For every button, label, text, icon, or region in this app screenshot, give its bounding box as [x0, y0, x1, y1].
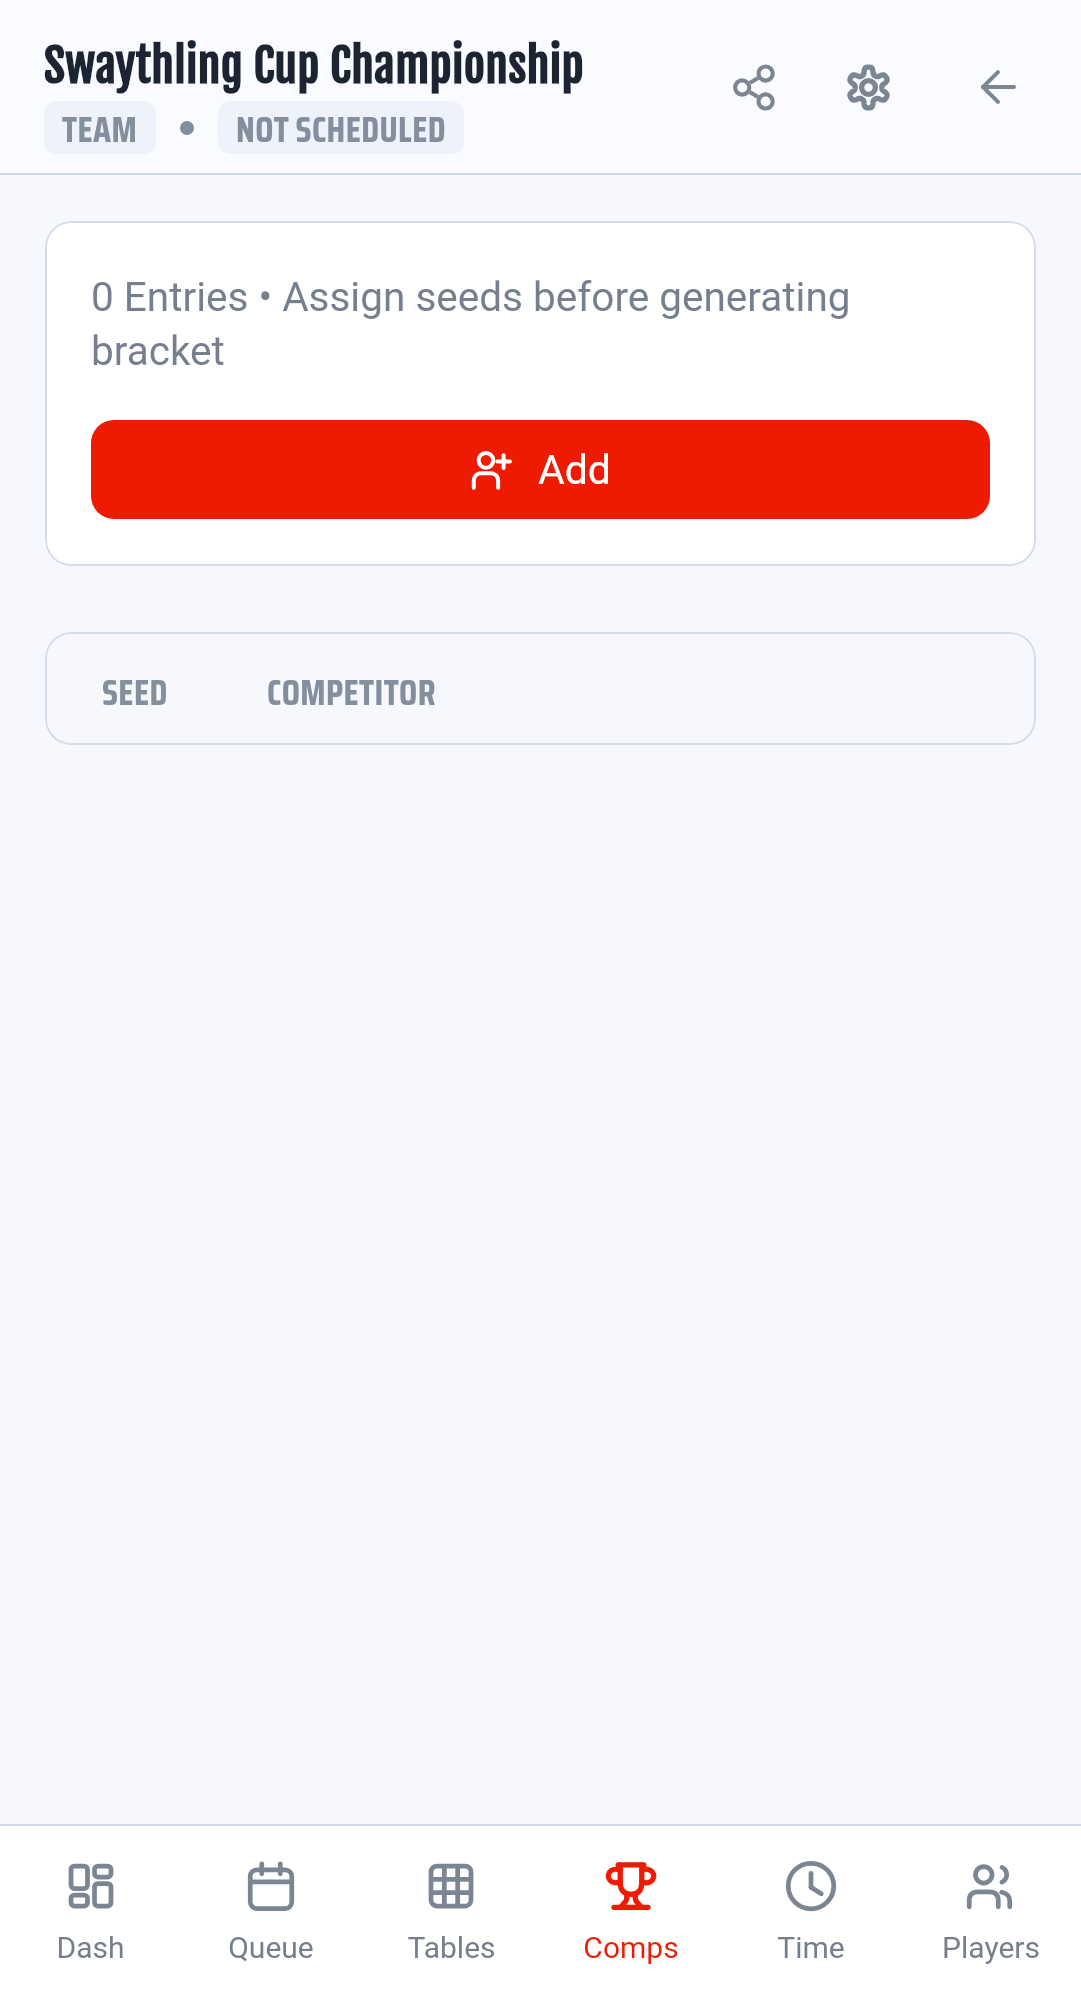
staticText: Queue — [228, 1930, 314, 1965]
button[interactable]: Tables — [361, 1826, 541, 1999]
staticText: Swaythling Cup Championship — [44, 37, 584, 95]
staticText: COMPETITOR — [267, 664, 436, 721]
staticText: Comps — [583, 1930, 679, 1965]
staticText: 0 Entries • Assign seeds before generati… — [91, 273, 990, 375]
staticText: Time — [777, 1930, 845, 1965]
button[interactable]: Comps — [541, 1826, 721, 1999]
staticText: Tables — [407, 1930, 496, 1965]
button[interactable]: Add — [91, 420, 990, 519]
button[interactable]: Back — [962, 51, 1034, 123]
button[interactable]: Players — [901, 1826, 1081, 1999]
staticText: TEAM — [62, 101, 138, 154]
button[interactable]: Settings — [832, 51, 904, 123]
staticText: SEED — [102, 664, 168, 721]
staticText: Players — [942, 1930, 1040, 1965]
staticText: Add — [538, 446, 611, 494]
button[interactable]: Queue — [181, 1826, 361, 1999]
staticText: Dash — [56, 1930, 125, 1965]
button[interactable]: Share — [719, 51, 791, 123]
button[interactable]: Time — [721, 1826, 901, 1999]
button[interactable]: Dash — [0, 1826, 181, 1999]
staticText: NOT SCHEDULED — [236, 101, 446, 154]
